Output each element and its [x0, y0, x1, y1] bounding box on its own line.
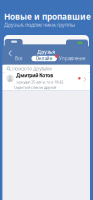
button[interactable]: Управление	[57, 56, 87, 61]
staticText: Друзья	[37, 48, 55, 55]
staticText: Друзья, подписчики, группы	[4, 21, 75, 28]
button[interactable]: Назад	[5, 47, 15, 59]
staticText: Поиск по друзьям	[12, 66, 52, 72]
staticText: заходил 25 августа в 18:42	[16, 79, 63, 85]
staticText: Дмитрий Котов	[16, 72, 53, 79]
button[interactable]: Дмитрий Котов	[2, 73, 90, 91]
button[interactable]: Поиск по друзьям	[2, 65, 90, 73]
button[interactable]: Онлайн	[31, 56, 57, 61]
button[interactable]: Все	[5, 56, 31, 61]
staticText: Новые и пропавшие	[4, 11, 91, 22]
staticText: Управление	[59, 55, 85, 61]
staticText: Все	[15, 55, 22, 61]
staticText: Онлайн	[36, 55, 53, 61]
staticText: Скрытый список друзей	[14, 85, 56, 90]
